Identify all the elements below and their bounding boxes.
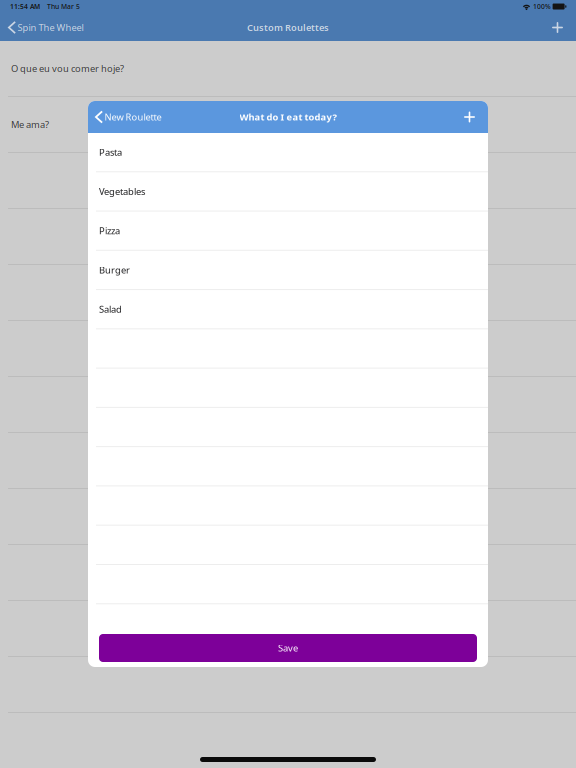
button[interactable]: Add roulette xyxy=(542,13,576,42)
staticText: What do I eat today? xyxy=(239,111,336,123)
staticText: O que eu vou comer hoje? xyxy=(11,62,124,75)
staticText: Save xyxy=(278,642,298,654)
button[interactable]: Add option xyxy=(454,101,488,133)
button[interactable] xyxy=(0,657,576,713)
button[interactable] xyxy=(0,433,576,489)
staticText: Salad xyxy=(99,303,122,315)
button[interactable] xyxy=(0,545,576,601)
button[interactable] xyxy=(0,153,576,209)
button[interactable]: Spin The Wheel xyxy=(0,13,89,42)
button[interactable]: O que eu vou comer hoje? xyxy=(0,41,576,97)
button[interactable]: Save xyxy=(99,634,477,662)
button[interactable]: Vegetables xyxy=(88,172,488,212)
staticText: Thu Mar 5 xyxy=(47,2,80,11)
button[interactable]: Pizza xyxy=(88,211,488,251)
staticText: Custom Roulettes xyxy=(247,21,329,34)
staticText: Me ama? xyxy=(11,118,49,131)
button[interactable] xyxy=(0,489,576,545)
staticText: Pasta xyxy=(99,146,122,158)
button[interactable] xyxy=(0,601,576,657)
button[interactable] xyxy=(0,377,576,433)
button[interactable] xyxy=(0,713,576,768)
button[interactable]: Me ama? xyxy=(0,97,576,153)
button[interactable] xyxy=(0,209,576,265)
button[interactable] xyxy=(0,265,576,321)
staticText: 11:54 AM xyxy=(10,2,40,11)
staticText: 100% xyxy=(533,2,551,11)
staticText: Burger xyxy=(99,264,130,276)
button[interactable]: Burger xyxy=(88,251,488,290)
staticText: Spin The Wheel xyxy=(17,21,83,34)
staticText: Pizza xyxy=(99,224,120,237)
staticText: Vegetables xyxy=(99,185,145,198)
button[interactable] xyxy=(0,321,576,377)
button[interactable]: Salad xyxy=(88,290,488,329)
button[interactable]: New Roulette xyxy=(88,101,167,133)
staticText: New Roulette xyxy=(104,111,161,123)
button[interactable]: Pasta xyxy=(88,133,488,172)
